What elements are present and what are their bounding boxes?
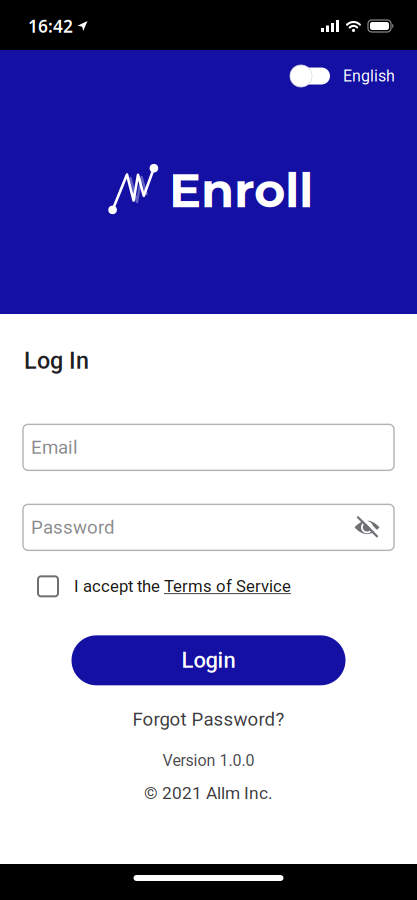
button[interactable]: Language toggle bbox=[290, 65, 330, 87]
button[interactable]: I accept the Terms of Service bbox=[38, 576, 291, 596]
staticText: Forgot Password? bbox=[132, 708, 284, 730]
staticText: Version 1.0.0 bbox=[162, 751, 254, 770]
button[interactable]: Login bbox=[71, 635, 345, 685]
staticText: Password bbox=[31, 516, 115, 538]
staticText: Email bbox=[31, 436, 78, 458]
staticText: 16:42 bbox=[28, 14, 73, 37]
staticText: Log In bbox=[24, 347, 89, 374]
button[interactable]: Forgot Password? bbox=[132, 708, 284, 730]
button[interactable]: Email bbox=[23, 424, 394, 470]
staticText: Login bbox=[181, 647, 235, 673]
staticText: English bbox=[343, 67, 395, 85]
staticText: Enroll bbox=[169, 161, 313, 219]
staticText: © 2021 Allm Inc. bbox=[144, 783, 273, 803]
button[interactable]: Password bbox=[23, 504, 394, 550]
staticText: I accept the Terms of Service bbox=[74, 577, 291, 596]
